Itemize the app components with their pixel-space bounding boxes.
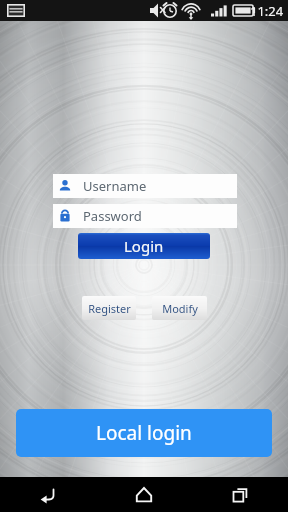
staticText: Login	[124, 236, 164, 256]
button[interactable]: Modify	[152, 296, 207, 320]
staticText: 11:24	[250, 2, 284, 20]
staticText: Username	[83, 177, 147, 195]
button[interactable]: Password	[53, 204, 237, 228]
button[interactable]: Recent apps	[192, 477, 288, 512]
button[interactable]: Back	[0, 477, 96, 512]
staticText: Register	[88, 301, 131, 316]
button[interactable]: Login	[78, 233, 210, 259]
staticText: Password	[83, 207, 142, 225]
staticText: Local login	[96, 420, 192, 446]
button[interactable]: Register	[82, 296, 136, 320]
button[interactable]: Home	[96, 477, 192, 512]
button[interactable]: Local login	[16, 409, 272, 457]
button[interactable]: Username	[53, 174, 237, 198]
staticText: Modify	[162, 301, 198, 316]
